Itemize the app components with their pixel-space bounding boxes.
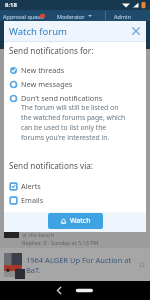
staticText: Don't send notifications: [21, 93, 103, 103]
staticText: Admin: [114, 13, 131, 20]
staticText: 1964 ALGER Up For Auction at BaT.: [26, 255, 135, 275]
button[interactable]: New threads: [9, 64, 141, 76]
button[interactable]: Close: [129, 24, 143, 38]
staticText: Moderator: [57, 13, 85, 20]
staticText: Send notifications via:: [9, 160, 94, 171]
staticText: Emails: [21, 195, 44, 205]
staticText: Replies: 0 · Sunday at 5:13 PM: [22, 239, 99, 246]
button[interactable]: 1964 ALGER Up For Auction at BaT.: [0, 248, 150, 281]
staticText: New threads: [21, 65, 65, 75]
staticText: Send notifications for:: [9, 45, 94, 56]
button[interactable]: Alerts: [9, 180, 141, 192]
staticText: at the beach: [22, 231, 55, 238]
button[interactable]: New messages: [9, 78, 141, 90]
staticText: New messages: [21, 79, 73, 89]
staticText: Watch: [70, 216, 91, 226]
staticText: 8:18: [5, 1, 17, 9]
button[interactable]: Watch: [48, 213, 103, 229]
button[interactable]: Watch thread: [138, 261, 146, 269]
button[interactable]: Don't send notifications: [9, 92, 141, 104]
button[interactable]: Emails: [9, 194, 141, 206]
staticText: Watch forum: [9, 25, 67, 38]
staticText: Approval queue: [3, 13, 44, 20]
staticText: Alerts: [21, 181, 41, 191]
staticText: The forum will still be listed on the wa…: [21, 103, 126, 142]
